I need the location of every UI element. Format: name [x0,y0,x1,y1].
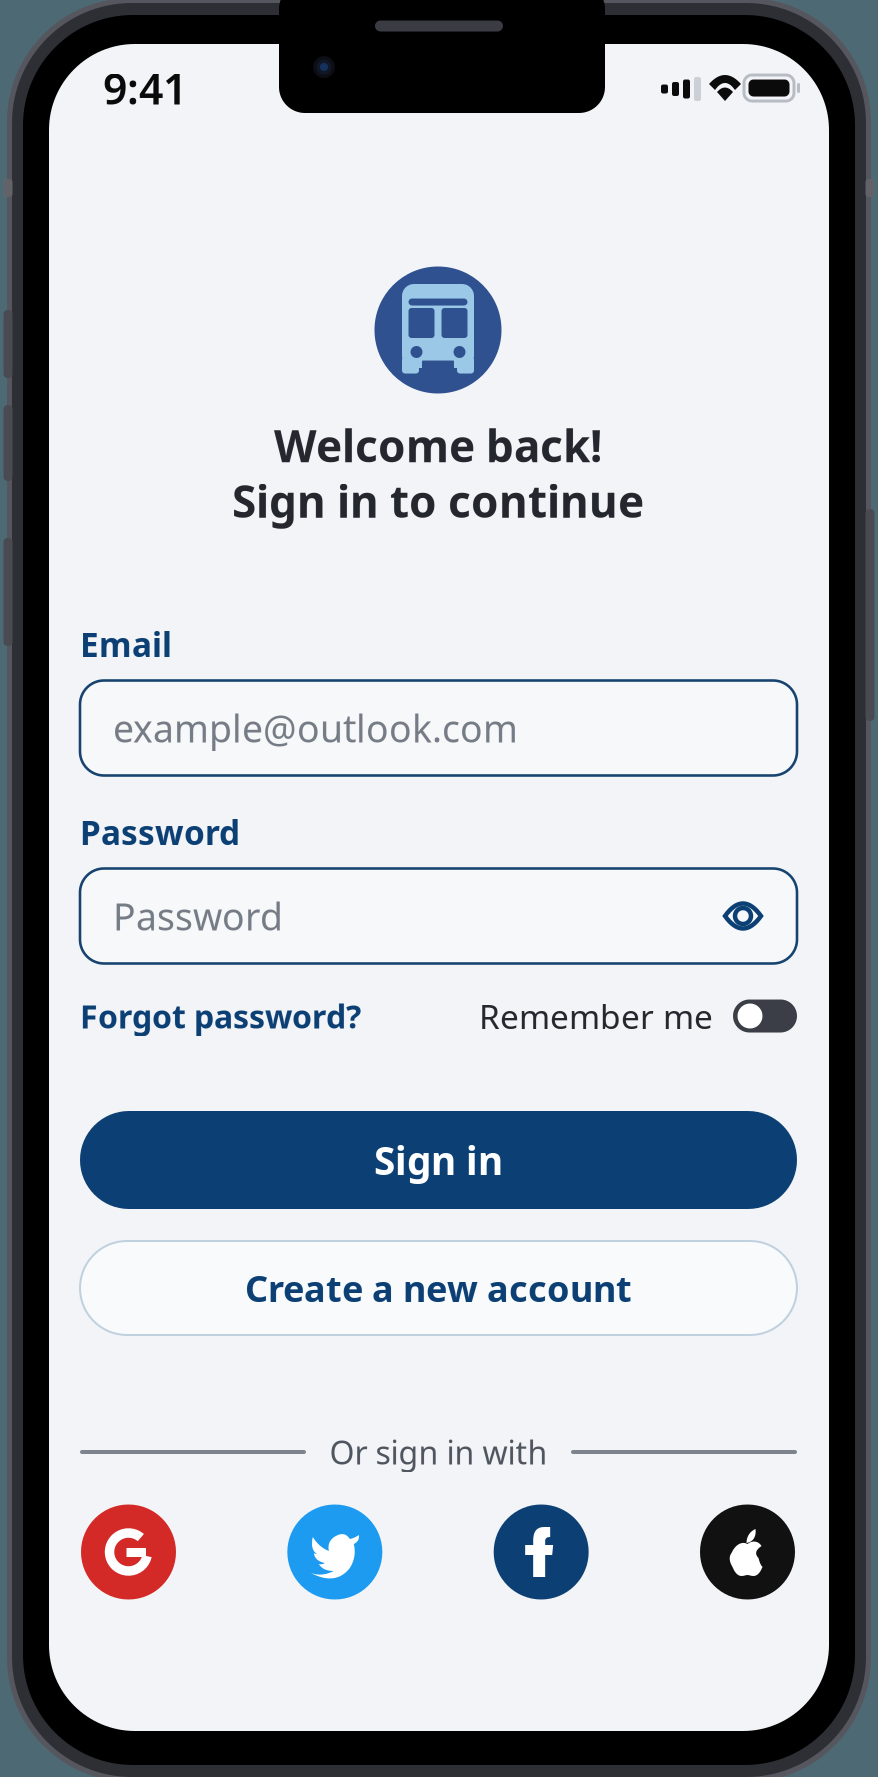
staticText: Password [80,810,240,854]
staticText: Email [80,622,172,666]
button[interactable]: Show password [722,900,764,932]
button[interactable]: Sign in with Twitter [287,1504,382,1599]
staticText: 9:41 [103,60,187,116]
staticText: example@outlook.com [113,703,518,753]
staticText: Password [113,891,283,941]
button[interactable]: Remember me [733,999,797,1032]
button[interactable]: Forgot password? [80,996,380,1036]
staticText: Or sign in with [329,1431,547,1473]
button[interactable]: Sign in [80,1111,797,1209]
button[interactable]: Sign in with Google [81,1504,176,1599]
staticText: Forgot password? [80,995,361,1037]
button[interactable]: Create a new account [80,1241,797,1335]
staticText: Sign in [374,1134,503,1186]
staticText: Remember me [479,994,713,1038]
staticText: Sign in to continue [232,471,644,530]
button[interactable]: Sign in with Apple [700,1504,795,1599]
staticText: Create a new account [245,1264,632,1312]
staticText: Welcome back! [274,416,602,474]
button[interactable]: Sign in with Facebook [494,1504,589,1599]
